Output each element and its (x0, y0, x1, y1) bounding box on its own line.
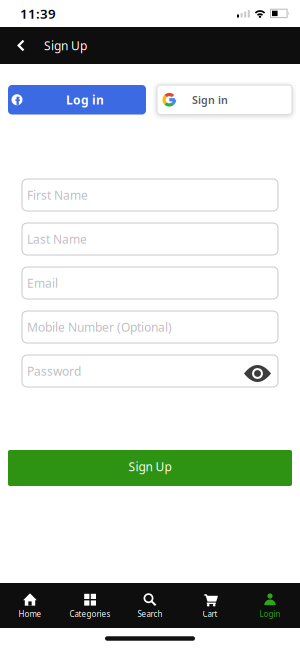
button[interactable]: Login (240, 583, 300, 628)
button[interactable]: Categories (60, 583, 120, 628)
staticText: Sign Up (44, 37, 87, 53)
staticText: Sign Up (128, 458, 171, 474)
staticText: First Name (27, 187, 88, 203)
staticText: Cart (202, 608, 217, 619)
staticText: Password (27, 363, 81, 379)
button[interactable]: Mobile Number (Optional) (22, 311, 278, 343)
staticText: Email (27, 275, 58, 291)
staticText: Last Name (27, 231, 87, 247)
staticText: Mobile Number (Optional) (27, 319, 172, 335)
button[interactable]: Search (120, 583, 180, 628)
button[interactable]: Last Name (22, 223, 278, 255)
button[interactable]: Home (0, 583, 60, 628)
button[interactable]: Back (0, 36, 32, 55)
staticText: Login (259, 608, 280, 619)
button[interactable]: Sign Up (8, 450, 292, 486)
button[interactable]: First Name (22, 179, 278, 211)
button[interactable]: Cart (180, 583, 240, 628)
button[interactable]: Email (22, 267, 278, 299)
staticText: Log in (66, 92, 104, 108)
button[interactable]: Sign in (157, 85, 292, 114)
staticText: Search (137, 608, 162, 619)
button[interactable]: Show password (244, 362, 271, 379)
button[interactable]: Password (22, 355, 278, 387)
staticText: Categories (69, 608, 110, 619)
staticText: Sign in (192, 93, 228, 107)
staticText: 11:39 (20, 5, 56, 22)
staticText: Home (18, 608, 41, 619)
button[interactable]: Log in (8, 85, 146, 114)
